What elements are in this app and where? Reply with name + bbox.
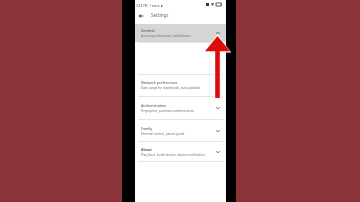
staticText: 3:34 PM 1 extra [136, 4, 160, 8]
staticText: About [141, 147, 152, 152]
staticText: Account preferences, notifications [141, 34, 191, 38]
button[interactable]: Authentication [135, 96, 226, 119]
button[interactable]: General [135, 24, 226, 42]
staticText: Family [141, 126, 153, 131]
staticText: General [141, 28, 155, 33]
staticText: Network preferences [141, 80, 178, 85]
button[interactable]: Back [136, 11, 145, 20]
staticText: Data usage for downloads, auto-updates [141, 86, 201, 90]
button[interactable]: Family [135, 119, 226, 142]
staticText: Play Store, build version, device certif… [141, 153, 205, 157]
staticText: Fingerprint, purchase authentication [141, 109, 195, 113]
button[interactable]: Network preferences [135, 74, 226, 96]
button[interactable]: About [135, 142, 226, 161]
staticText: Settings [151, 12, 169, 18]
staticText: Parental control, parent guide [141, 132, 185, 136]
staticText: Authentication [141, 103, 167, 108]
